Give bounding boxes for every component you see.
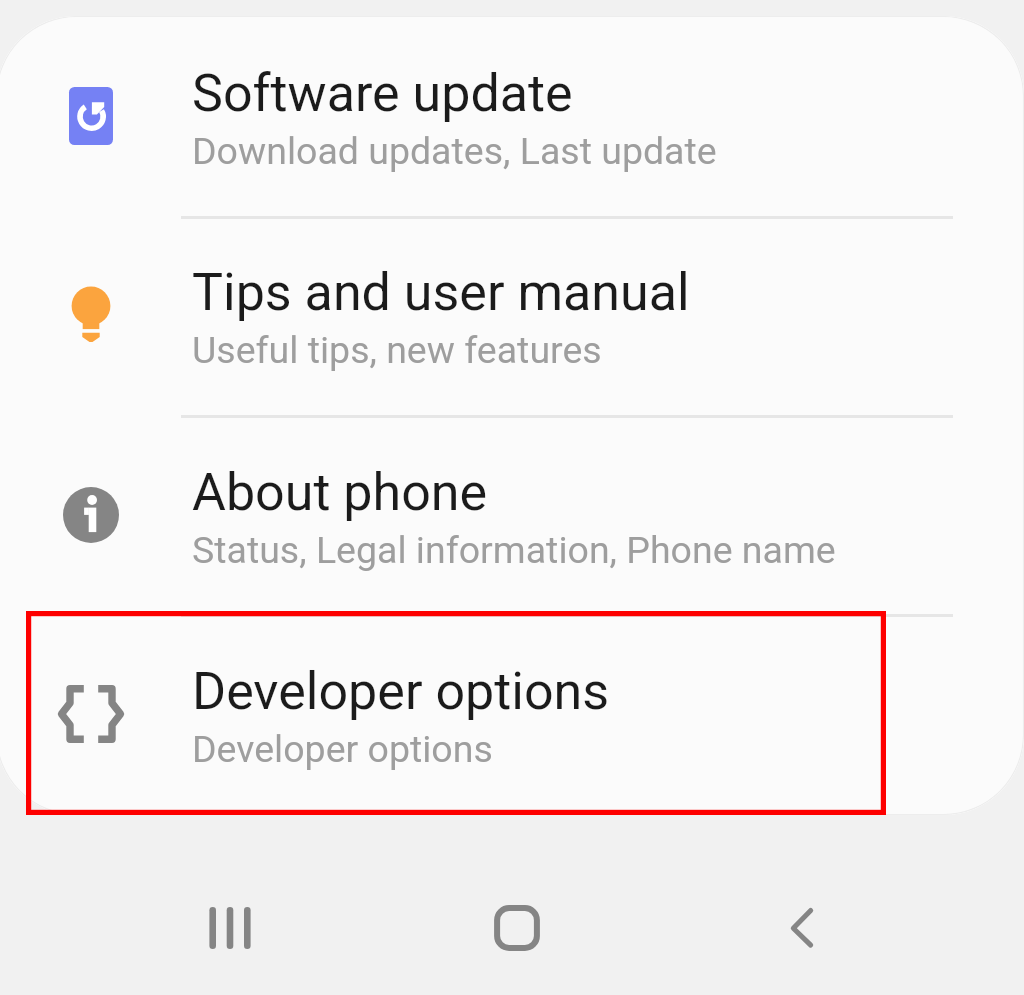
staticText: Tips and user manual [192, 262, 690, 323]
staticText: About phone [192, 462, 488, 523]
button[interactable]: Software update [0, 16, 1023, 215]
staticText: Developer options [192, 727, 493, 771]
button[interactable]: About phone [0, 415, 1023, 614]
staticText: Status, Legal information, Phone name [192, 528, 836, 572]
button[interactable]: Developer options [0, 614, 1023, 813]
staticText: Developer options [192, 661, 610, 722]
button[interactable]: Tips and user manual [0, 215, 1023, 414]
button[interactable]: Back [732, 860, 872, 995]
staticText: Useful tips, new features [192, 328, 602, 372]
button[interactable]: Home [447, 860, 587, 995]
staticText: Download updates, Last update [192, 129, 717, 173]
button[interactable]: Recent apps [160, 860, 300, 995]
staticText: Software update [192, 63, 573, 124]
